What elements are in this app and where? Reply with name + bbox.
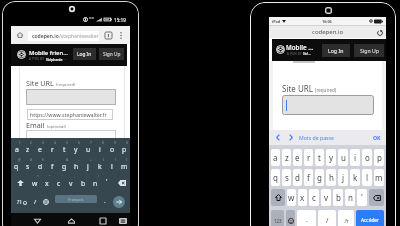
button[interactable]: u — [338, 149, 348, 166]
button[interactable]: p — [374, 149, 384, 166]
button[interactable]: 123 — [271, 210, 284, 226]
button[interactable]: g — [315, 169, 324, 186]
button[interactable]: Tabs — [103, 30, 113, 40]
button[interactable]: ' — [357, 189, 367, 206]
button[interactable]: 4 — [46, 140, 58, 157]
button[interactable]: ! — [89, 174, 101, 191]
button[interactable]: @ — [11, 157, 22, 174]
button[interactable]: m — [374, 169, 384, 186]
button[interactable]: Mots de passe — [299, 134, 335, 141]
button[interactable]: Shift — [271, 189, 285, 206]
button[interactable]: a — [271, 149, 280, 166]
button[interactable]: 7 — [82, 140, 94, 157]
button[interactable]: ; — [77, 174, 89, 191]
button[interactable]: Backspace — [369, 189, 384, 206]
button[interactable]: Sign Up — [99, 48, 124, 60]
button[interactable]: _ — [46, 157, 58, 174]
button[interactable]: i — [350, 149, 360, 166]
button[interactable]: 9 — [106, 140, 118, 157]
button[interactable]: t — [315, 149, 324, 166]
button[interactable]: 5 — [58, 140, 70, 157]
button[interactable]: y — [326, 149, 336, 166]
button[interactable]: Change keyboard — [117, 215, 128, 226]
staticText: Site URL — [26, 78, 54, 88]
button[interactable]: c — [309, 189, 319, 206]
button[interactable]: 8 — [94, 140, 106, 157]
button[interactable]: l — [362, 169, 372, 186]
button[interactable]: More options — [117, 30, 125, 40]
button[interactable]: * — [29, 174, 41, 191]
button[interactable]: Shift — [11, 174, 29, 191]
button[interactable]: q — [271, 169, 280, 186]
button[interactable]: b — [333, 189, 343, 206]
button[interactable]: + — [82, 157, 94, 174]
button[interactable]: OK — [373, 134, 381, 141]
staticText: d — [295, 172, 300, 183]
button[interactable]: Change language — [40, 191, 51, 213]
button[interactable]: " — [41, 174, 53, 191]
button[interactable]: 6 — [70, 140, 82, 157]
button[interactable]: Sign Up — [354, 44, 384, 57]
staticText: y — [74, 145, 78, 154]
button[interactable]: x — [298, 189, 307, 206]
button[interactable]: # — [22, 157, 34, 174]
button[interactable]: . — [297, 210, 316, 226]
button[interactable]: 0 — [118, 140, 130, 157]
button[interactable]: Symbols — [14, 191, 30, 213]
button[interactable]: .fr — [338, 210, 354, 226]
button[interactable]: € — [34, 157, 46, 174]
button[interactable]: v — [321, 189, 331, 206]
button[interactable]: Back — [32, 215, 43, 226]
button[interactable]: 2 — [22, 140, 34, 157]
button[interactable]: f — [304, 169, 313, 186]
button[interactable]: . — [100, 191, 110, 213]
button[interactable]: w — [287, 189, 296, 206]
button[interactable] — [26, 89, 116, 105]
button[interactable]: Reload — [375, 28, 384, 37]
staticText: f — [307, 172, 310, 183]
button[interactable]: Accéder — [356, 210, 384, 226]
button[interactable]: r — [304, 149, 313, 166]
button[interactable]: Go — [112, 191, 125, 213]
staticText: n — [348, 192, 353, 203]
button[interactable]: codepen.io — [28, 31, 99, 41]
button[interactable]: Home — [15, 30, 25, 40]
button[interactable]: Backspace — [113, 174, 130, 191]
staticText: 0 — [126, 141, 128, 145]
button[interactable]: Log In — [73, 48, 96, 60]
button[interactable]: / — [118, 157, 130, 174]
button[interactable] — [26, 130, 116, 139]
button[interactable]: Log In — [322, 44, 350, 57]
button[interactable]: Home — [66, 215, 77, 226]
button[interactable]: https://www.stephaniewalter.fr — [27, 109, 113, 120]
button[interactable]: - — [70, 157, 82, 174]
button[interactable]: z — [282, 149, 291, 166]
button[interactable]: s — [282, 169, 291, 186]
button[interactable]: 3 — [34, 140, 46, 157]
button[interactable]: Emoji — [286, 210, 295, 226]
button[interactable] — [282, 95, 374, 115]
button[interactable]: o — [362, 149, 372, 166]
button[interactable]: e — [293, 149, 302, 166]
button[interactable]: Recent apps — [97, 215, 108, 226]
button[interactable]: Previous field — [273, 133, 282, 142]
staticText: w — [288, 192, 295, 203]
button[interactable]: n — [345, 189, 355, 206]
button[interactable]: : — [65, 174, 77, 191]
button[interactable]: / — [30, 191, 41, 213]
button[interactable]: d — [293, 169, 302, 186]
button[interactable]: ' — [53, 174, 65, 191]
button[interactable]: ' — [101, 174, 113, 191]
button[interactable]: Next field — [286, 133, 295, 142]
button[interactable]: ) — [106, 157, 118, 174]
button[interactable]: j — [338, 169, 348, 186]
button[interactable]: ( — [94, 157, 106, 174]
button[interactable]: / — [318, 210, 336, 226]
button[interactable]: Français — [55, 195, 97, 203]
button[interactable]: h — [326, 169, 336, 186]
staticText: o — [365, 152, 370, 163]
button[interactable]: k — [350, 169, 360, 186]
button[interactable]: 1 — [11, 140, 22, 157]
button[interactable]: & — [58, 157, 70, 174]
staticText: d — [38, 162, 43, 171]
